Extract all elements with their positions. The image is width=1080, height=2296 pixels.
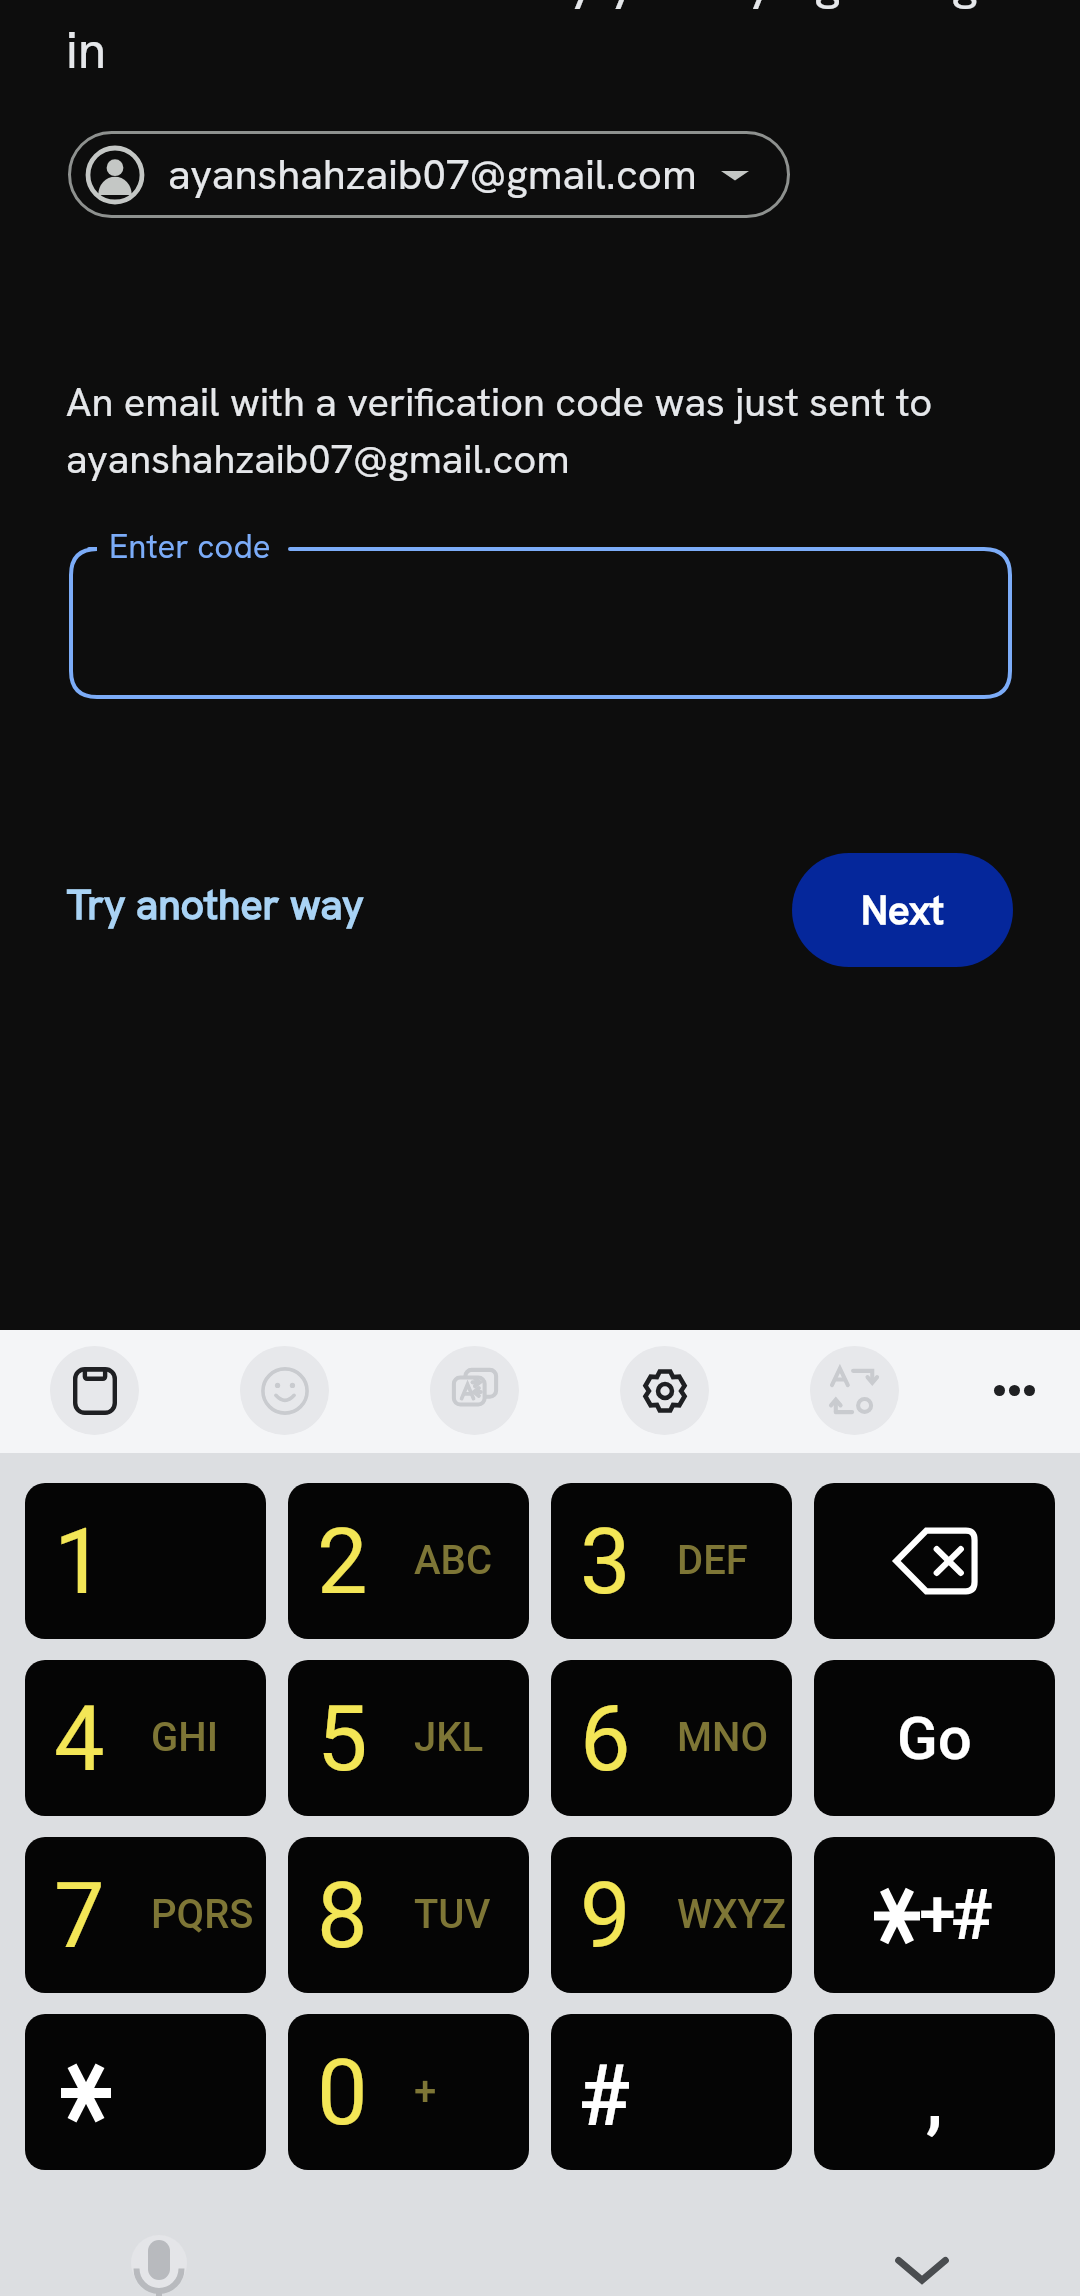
staticText: WXYZ: [677, 1891, 787, 1938]
button[interactable]: Next: [792, 853, 1013, 967]
button[interactable]: 4: [25, 1660, 266, 1816]
staticText: PQRS: [151, 1891, 254, 1938]
staticText: JKL: [414, 1714, 484, 1761]
staticText: ,: [926, 2054, 943, 2143]
staticText: #: [950, 1874, 993, 1956]
button[interactable]: Translate: [430, 1346, 519, 1435]
staticText: 3: [580, 1510, 631, 1615]
button[interactable]: 7: [25, 1837, 266, 1993]
button[interactable]: Try another way: [45, 866, 386, 943]
button[interactable]: [25, 2014, 266, 2170]
staticText: Enter code: [109, 525, 271, 568]
staticText: Go: [897, 1703, 973, 1773]
button[interactable]: Enter code: [69, 547, 1012, 699]
button[interactable]: Text correction: [810, 1346, 899, 1435]
button[interactable]: #: [551, 2014, 792, 2170]
staticText: 5: [317, 1687, 368, 1792]
staticText: DEF: [677, 1537, 748, 1584]
button[interactable]: Hide keyboard: [874, 2222, 970, 2296]
button[interactable]: More options: [970, 1346, 1059, 1435]
staticText: 9: [580, 1864, 631, 1969]
staticText: An email with a verification code was ju…: [66, 376, 966, 485]
button[interactable]: ,: [814, 2014, 1055, 2170]
staticText: ayanshahzaib07@gmail.com: [168, 147, 697, 202]
staticText: Try another way: [67, 878, 364, 931]
button[interactable]: 3: [551, 1483, 792, 1639]
staticText: 2: [317, 1510, 368, 1615]
staticText: 1: [54, 1510, 105, 1615]
button[interactable]: Backspace: [814, 1483, 1055, 1639]
button[interactable]: 5: [288, 1660, 529, 1816]
button[interactable]: 2: [288, 1483, 529, 1639]
staticText: Next: [861, 884, 944, 936]
button[interactable]: ayanshahzaib07@gmail.com: [68, 131, 765, 218]
staticText: in: [66, 16, 107, 84]
other: Backspace: [814, 1483, 1055, 1639]
button[interactable]: Go: [814, 1660, 1055, 1816]
staticText: #: [578, 2045, 631, 2146]
button[interactable]: +: [814, 1837, 1055, 1993]
staticText: 6: [580, 1687, 631, 1792]
button[interactable]: Emoji: [240, 1346, 329, 1435]
staticText: Try another way: [67, 878, 364, 931]
staticText: TUV: [414, 1891, 491, 1938]
staticText: 0: [317, 2041, 368, 2146]
button[interactable]: 6: [551, 1660, 792, 1816]
staticText: 7: [54, 1864, 105, 1969]
staticText: +: [414, 2068, 437, 2115]
button[interactable]: Settings: [620, 1346, 709, 1435]
button[interactable]: 8: [288, 1837, 529, 1993]
staticText: 8: [317, 1864, 368, 1969]
staticText: To make sure it's really you trying to s…: [66, 0, 1007, 14]
button[interactable]: Clipboard: [50, 1346, 139, 1435]
staticText: ABC: [414, 1537, 492, 1584]
staticText: +: [919, 1876, 956, 1953]
button[interactable]: Voice input: [115, 2219, 203, 2296]
staticText: Next: [861, 884, 944, 936]
button[interactable]: 1: [25, 1483, 266, 1639]
button[interactable]: 9: [551, 1837, 792, 1993]
button[interactable]: 0: [288, 2014, 529, 2170]
staticText: MNO: [677, 1714, 769, 1761]
staticText: GHI: [151, 1714, 218, 1761]
staticText: 4: [54, 1687, 105, 1792]
